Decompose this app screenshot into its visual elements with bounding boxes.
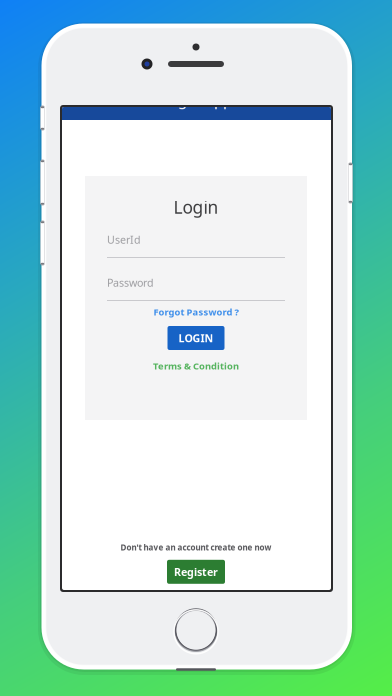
staticText: Login App [161,91,232,110]
staticText: LOGIN [178,331,213,345]
staticText: Register [174,565,218,579]
button[interactable]: Forgot Password ? [146,305,246,319]
staticText: Password [107,275,154,290]
staticText: UserId [107,232,141,247]
staticText: Forgot Password ? [153,306,238,318]
staticText: Don't have an account create one now [120,542,271,553]
button[interactable]: LOGIN [167,326,224,350]
staticText: Login [173,195,218,218]
button[interactable]: Register [167,560,225,584]
staticText: Terms & Condition [153,360,239,372]
button[interactable]: Terms & Condition [141,359,251,373]
